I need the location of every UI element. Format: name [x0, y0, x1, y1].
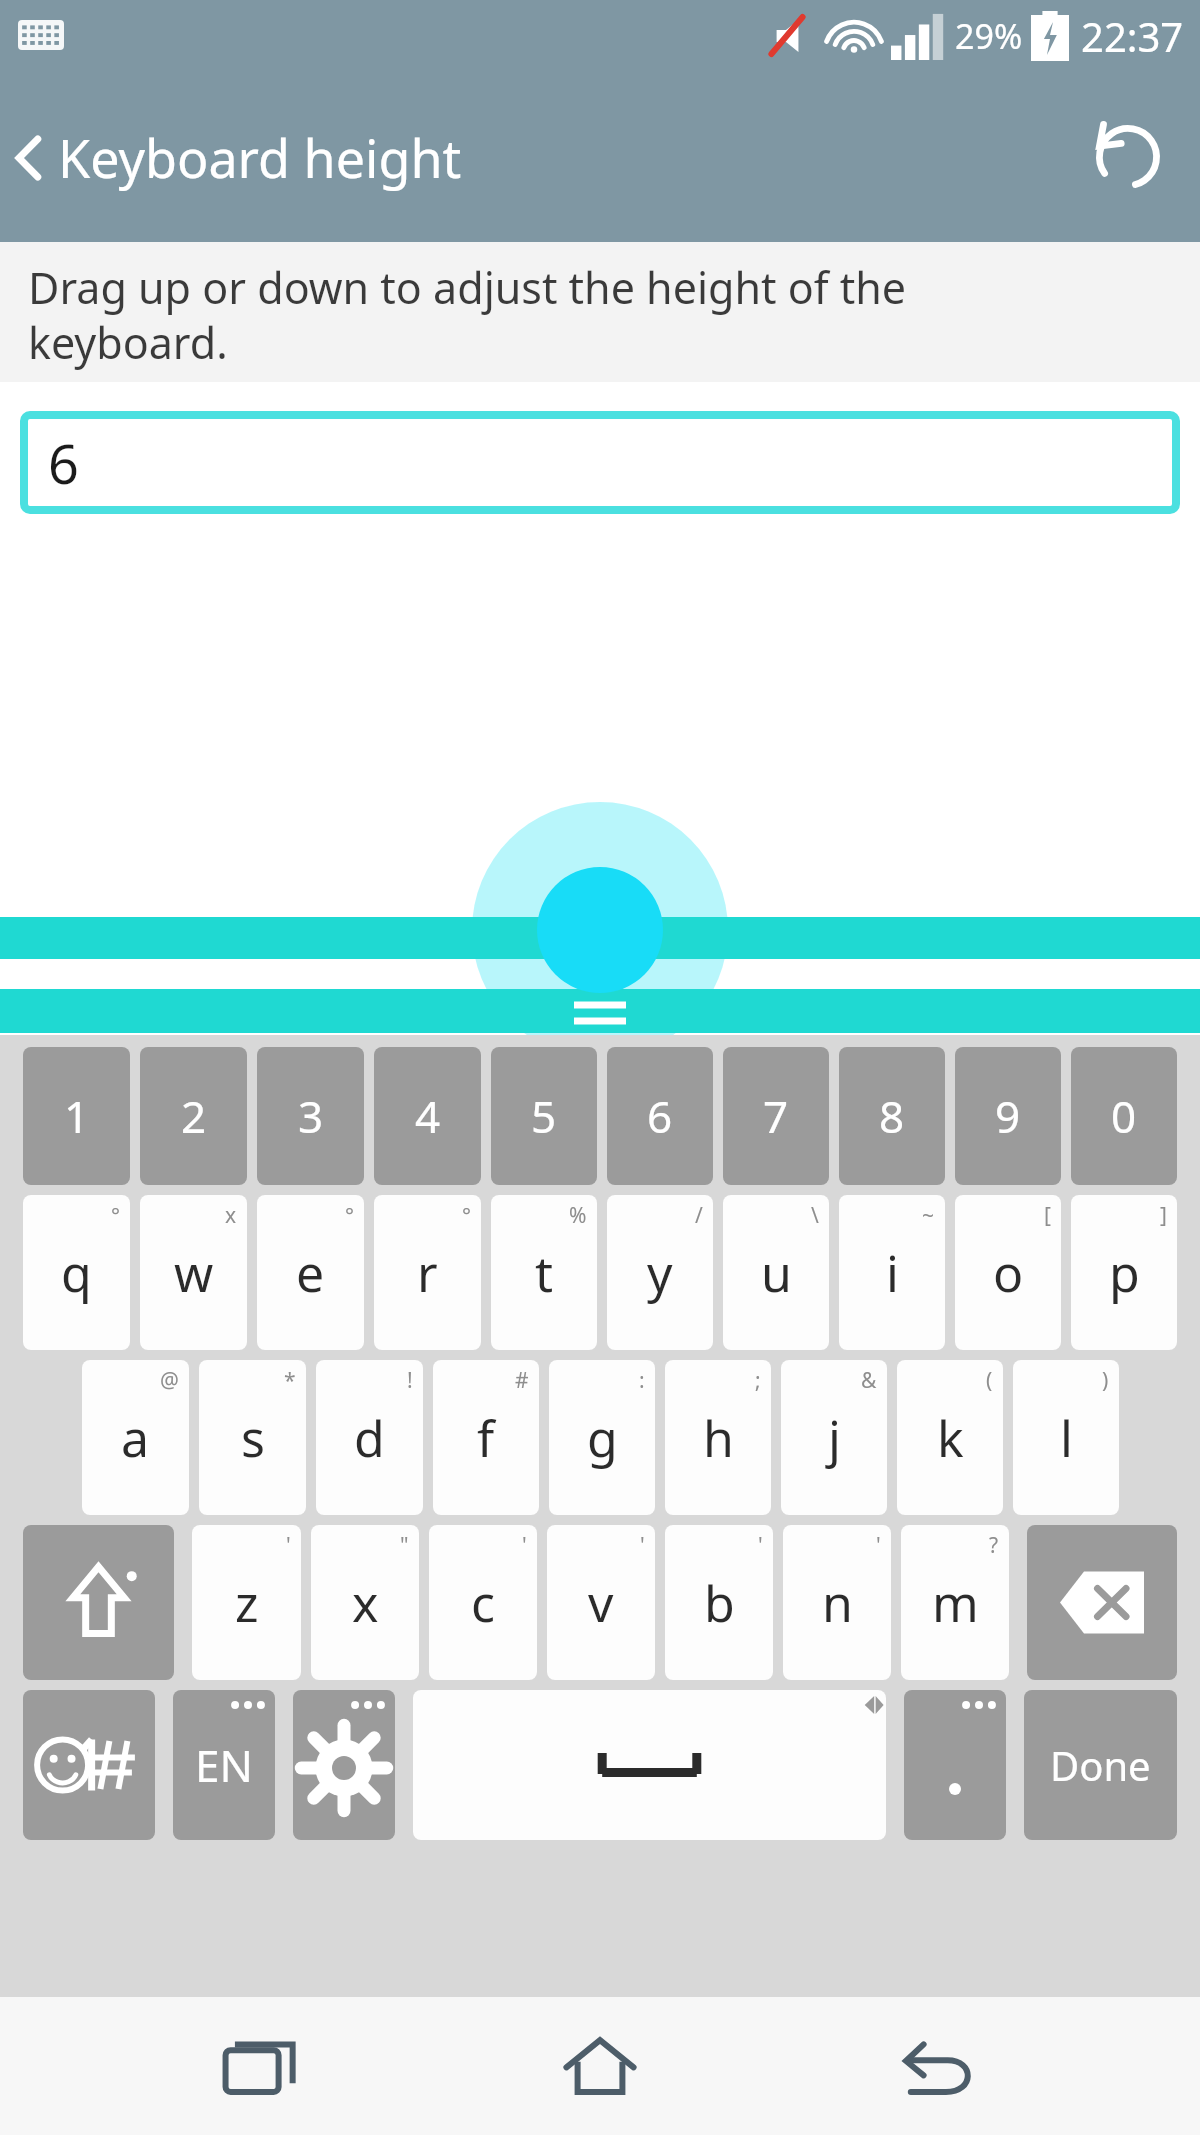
button[interactable]: 0 [1071, 1047, 1177, 1185]
button[interactable]: u [723, 1195, 829, 1350]
button[interactable]: Reset [1082, 111, 1174, 203]
button[interactable]: q [23, 1195, 130, 1350]
button[interactable]: k [897, 1360, 1003, 1515]
staticText: * [284, 1366, 296, 1395]
button[interactable]: Done [1024, 1690, 1177, 1840]
staticText: ? [989, 1531, 999, 1560]
button[interactable]: Settings [293, 1690, 395, 1840]
staticText: [ [1044, 1201, 1051, 1230]
button[interactable]: 1 [23, 1047, 130, 1185]
button[interactable]: Shift [23, 1525, 174, 1680]
button[interactable]: n [783, 1525, 891, 1680]
staticText: 5 [531, 1086, 557, 1146]
button[interactable]: d [316, 1360, 423, 1515]
staticText: e [296, 1239, 325, 1307]
staticText: # [515, 1366, 529, 1395]
button[interactable]: Space [413, 1690, 886, 1840]
button[interactable]: b [665, 1525, 773, 1680]
staticText: v [588, 1569, 614, 1637]
button[interactable]: Back [863, 2006, 1013, 2126]
button[interactable]: 6 [607, 1047, 713, 1185]
button[interactable]: c [429, 1525, 537, 1680]
staticText: 1 [64, 1086, 90, 1146]
button[interactable]: s [199, 1360, 306, 1515]
button[interactable]: 2 [140, 1047, 247, 1185]
button[interactable]: y [607, 1195, 713, 1350]
button[interactable]: 4 [374, 1047, 481, 1185]
staticText: Done [1050, 1738, 1151, 1792]
button[interactable]: e [257, 1195, 364, 1350]
staticText: i [886, 1239, 899, 1307]
staticText: r [417, 1239, 438, 1307]
other: Back [14, 130, 42, 186]
staticText: 3 [298, 1086, 324, 1146]
button[interactable]: h [665, 1360, 771, 1515]
button[interactable]: z [192, 1525, 301, 1680]
button[interactable]: 7 [723, 1047, 829, 1185]
staticText: x [352, 1569, 379, 1637]
staticText: 2 [181, 1086, 207, 1146]
button[interactable]: Home [525, 2006, 675, 2126]
button[interactable]: Backspace [1027, 1525, 1177, 1680]
staticText: ) [1102, 1366, 1109, 1395]
button[interactable]: j [781, 1360, 887, 1515]
staticText: ' [758, 1531, 763, 1560]
staticText: b [704, 1569, 735, 1637]
button[interactable]: g [549, 1360, 655, 1515]
staticText: a [121, 1404, 150, 1472]
staticText: g [587, 1404, 618, 1472]
button[interactable]: p [1071, 1195, 1177, 1350]
staticText: 22:37 [1081, 9, 1184, 63]
staticText: % [569, 1201, 587, 1230]
button[interactable]: r [374, 1195, 481, 1350]
button[interactable]: EN [173, 1690, 275, 1840]
staticText: f [477, 1404, 495, 1472]
staticText: l [1060, 1404, 1073, 1472]
button[interactable]: 8 [839, 1047, 945, 1185]
staticText: Drag up or down to adjust the height of … [28, 258, 907, 372]
button[interactable]: 3 [257, 1047, 364, 1185]
staticText: w [174, 1239, 214, 1307]
staticText: h [703, 1404, 734, 1472]
button[interactable]: Period [904, 1690, 1006, 1840]
staticText: : [639, 1366, 645, 1395]
button[interactable]: x [311, 1525, 419, 1680]
staticText: @ [160, 1366, 179, 1395]
staticText: z [235, 1569, 259, 1637]
staticText: 4 [415, 1086, 441, 1146]
button[interactable]: 5 [491, 1047, 597, 1185]
button[interactable]: a [82, 1360, 189, 1515]
button[interactable]: Back [0, 110, 478, 205]
button[interactable]: t [491, 1195, 597, 1350]
staticText: ' [286, 1531, 291, 1560]
staticText: c [471, 1569, 495, 1637]
button[interactable]: f [433, 1360, 539, 1515]
staticText: s [241, 1404, 265, 1472]
button[interactable]: Emoji and symbols [23, 1690, 155, 1840]
button[interactable]: Recents [188, 2006, 338, 2126]
staticText: ' [640, 1531, 645, 1560]
staticText: x [225, 1201, 237, 1230]
button[interactable]: l [1013, 1360, 1119, 1515]
staticText: \ [811, 1201, 819, 1230]
staticText: 29% [955, 13, 1023, 59]
button[interactable]: o [955, 1195, 1061, 1350]
button[interactable]: v [547, 1525, 655, 1680]
button[interactable]: w [140, 1195, 247, 1350]
staticText: ° [111, 1201, 120, 1230]
staticText: ; [755, 1366, 761, 1395]
staticText: 7 [763, 1086, 789, 1146]
staticText: k [937, 1404, 964, 1472]
staticText: q [61, 1239, 92, 1307]
staticText: d [354, 1404, 385, 1472]
staticText: j [828, 1404, 841, 1472]
staticText: 0 [1111, 1086, 1137, 1146]
button[interactable]: 9 [955, 1047, 1061, 1185]
button[interactable]: m [901, 1525, 1009, 1680]
staticText: n [822, 1569, 853, 1637]
staticText: t [535, 1239, 554, 1307]
staticText: " [400, 1531, 409, 1560]
button[interactable]: i [839, 1195, 945, 1350]
staticText: 9 [995, 1086, 1021, 1146]
button[interactable]: 6 [24, 415, 1176, 510]
